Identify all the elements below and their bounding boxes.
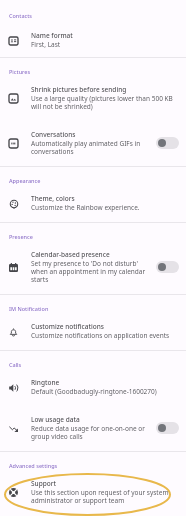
staticText: Conversations	[31, 130, 76, 139]
button[interactable]: Support	[0, 470, 186, 515]
staticText: IM Notification	[9, 305, 49, 312]
staticText: Use this section upon request of your sy…	[31, 488, 179, 505]
staticText: Default (Goodbadugly-ringtone-1600270)	[31, 387, 157, 396]
staticText: Customize notifications	[31, 322, 104, 331]
staticText: Name format	[31, 31, 73, 40]
staticText: Theme, colors	[31, 194, 75, 203]
staticText: Presence	[9, 233, 33, 240]
button[interactable]: Conversations	[0, 121, 186, 166]
staticText: Calls	[9, 361, 22, 368]
button[interactable]: Calendar-based presence	[0, 241, 186, 294]
staticText: Set my presence to 'Do not disturb' when…	[31, 259, 151, 284]
button[interactable]: Ringtone	[0, 369, 186, 406]
staticText: Ringtone	[31, 378, 60, 387]
staticText: Contacts	[9, 12, 33, 19]
staticText: Use a large quality (pictures lower than…	[31, 94, 179, 111]
staticText: Shrink pictures before sending	[31, 85, 127, 94]
staticText: Appearance	[9, 177, 41, 184]
button[interactable]: Toggle setting	[156, 261, 179, 273]
staticText: Customize the Rainbow experience.	[31, 203, 140, 212]
button[interactable]: Shrink pictures before sending	[0, 76, 186, 121]
staticText: Support	[31, 479, 56, 488]
button[interactable]: Low usage data	[0, 406, 186, 451]
button[interactable]: Customize notifications	[0, 313, 186, 350]
staticText: Reduce data usage for one-on-one or grou…	[31, 424, 151, 441]
staticText: First, Last	[31, 40, 61, 49]
staticText: Pictures	[9, 68, 31, 75]
staticText: Low usage data	[31, 415, 80, 424]
staticText: Customize notifications on application e…	[31, 331, 170, 340]
staticText: Automatically play animated GIFs in conv…	[31, 139, 151, 156]
staticText: Advanced settings	[9, 462, 58, 469]
button[interactable]: Name format	[0, 20, 186, 57]
button[interactable]: Toggle setting	[156, 137, 179, 149]
button[interactable]: Theme, colors	[0, 185, 186, 222]
staticText: Calendar-based presence	[31, 250, 110, 259]
button[interactable]: Toggle setting	[156, 422, 179, 434]
